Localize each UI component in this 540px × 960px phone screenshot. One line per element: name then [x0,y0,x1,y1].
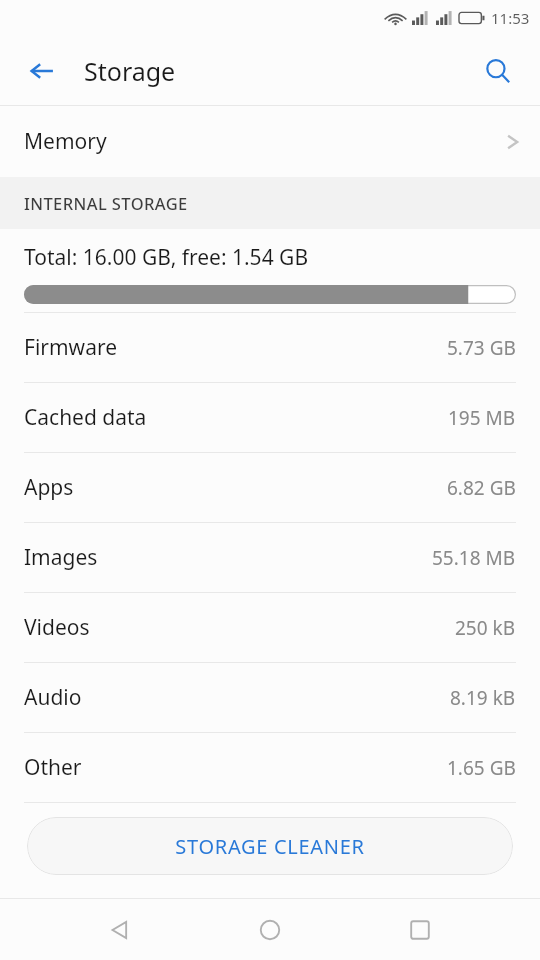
staticText: STORAGE CLEANER [175,833,365,860]
staticText: Images [24,543,98,572]
button[interactable]: Cached data [0,383,540,452]
button[interactable]: Home [240,900,300,960]
staticText: 5.73 GB [447,335,516,361]
button[interactable]: Apps [0,453,540,522]
staticText: 6.82 GB [447,475,516,501]
staticText: 8.19 kB [450,685,516,711]
button[interactable]: Videos [0,593,540,662]
button[interactable]: Firmware [0,313,540,382]
staticText: 250 kB [455,615,516,641]
staticText: 195 MB [448,405,516,431]
staticText: Total: 16.00 GB, free: 1.54 GB [24,243,309,272]
staticText: Apps [24,473,74,502]
button[interactable]: Back [14,43,70,99]
staticText: Storage [84,54,176,88]
button[interactable]: Recent apps [390,900,450,960]
button[interactable]: STORAGE CLEANER [27,817,513,875]
button[interactable]: Audio [0,663,540,732]
staticText: Videos [24,613,90,642]
staticText: Cached data [24,403,147,432]
staticText: 55.18 MB [432,545,516,571]
staticText: Firmware [24,333,118,362]
button[interactable]: Other [0,733,540,802]
staticText: 1.65 GB [447,755,516,781]
staticText: 11:53 [491,8,530,28]
button[interactable]: Images [0,523,540,592]
staticText: Other [24,753,82,782]
button[interactable]: Back [90,900,150,960]
staticText: Audio [24,683,82,712]
staticText: Memory [24,127,107,156]
button[interactable]: Memory [0,106,540,177]
staticText: INTERNAL STORAGE [24,192,188,214]
button[interactable]: Search [470,43,526,99]
